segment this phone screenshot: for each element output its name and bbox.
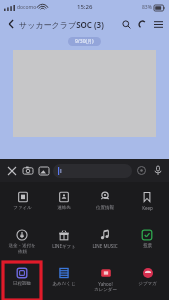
staticText: ジブマガ [138, 281, 157, 287]
button[interactable]: LINE MUSIC [86, 224, 124, 262]
staticText: 依頼 [18, 249, 27, 255]
button[interactable]: Search [119, 17, 133, 31]
button[interactable]: Close [4, 163, 19, 178]
button[interactable]: Menu [151, 17, 165, 31]
button[interactable]: ファイル [3, 186, 41, 224]
staticText: 日程調整 [13, 281, 31, 287]
button[interactable] [53, 164, 132, 178]
button[interactable]: LINEギフト [45, 224, 83, 262]
staticText: docomo [17, 4, 37, 11]
button[interactable]: 投票 [128, 224, 166, 262]
staticText: 位置情報 [96, 205, 114, 211]
staticText: 83% [142, 4, 152, 11]
button[interactable]: Sticker [134, 163, 149, 178]
button[interactable]: Gallery [36, 163, 51, 178]
staticText: ファイル [13, 205, 32, 211]
button[interactable]: Back [4, 17, 18, 31]
staticText: Yahoo! [98, 281, 113, 287]
staticText: 15:26 [77, 3, 93, 11]
button[interactable]: Keep [128, 186, 166, 224]
button[interactable]: Voice message [150, 163, 165, 178]
button[interactable]: 連絡先 [45, 186, 83, 224]
staticText: 9/30(月) [75, 38, 94, 45]
staticText: 送金・送付を [8, 243, 36, 249]
button[interactable]: 日程調整 [3, 262, 41, 300]
button[interactable]: あみだくじ [45, 262, 83, 300]
staticText: あみだくじ [52, 281, 76, 287]
button[interactable]: Call [135, 17, 149, 31]
staticText: 投票 [143, 243, 152, 249]
button[interactable]: ジブマガ [128, 262, 166, 300]
staticText: サッカークラブSOC (3) [19, 19, 104, 30]
staticText: LINEギフト [52, 243, 76, 249]
staticText: Keep [142, 205, 153, 211]
staticText: LINE MUSIC [92, 243, 118, 249]
button[interactable]: 送金・送付を [3, 224, 41, 262]
staticText: カレンダー [94, 287, 117, 293]
staticText: 連絡先 [57, 205, 71, 211]
button[interactable]: 位置情報 [86, 186, 124, 224]
button[interactable]: Yahoo! [86, 262, 124, 300]
button[interactable]: Camera [20, 163, 35, 178]
